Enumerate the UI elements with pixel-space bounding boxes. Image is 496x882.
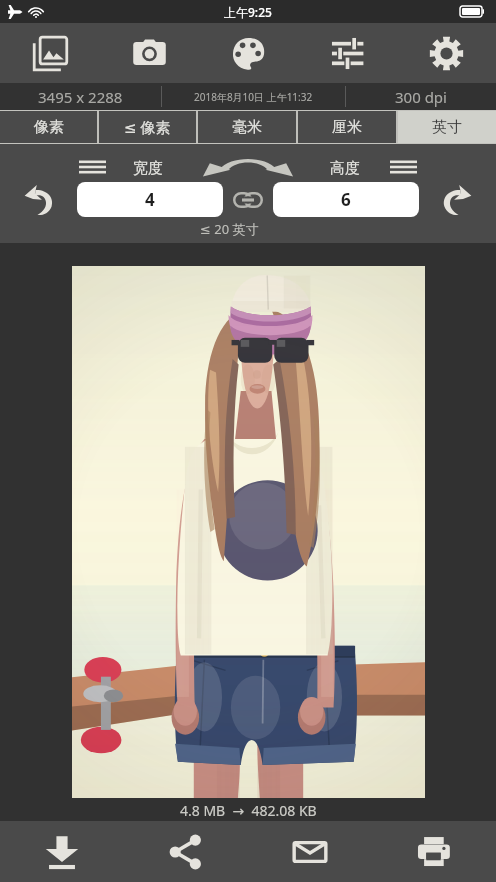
staticText: 厘米: [332, 118, 362, 137]
button[interactable]: Adjust: [298, 23, 397, 83]
button[interactable]: 6: [273, 182, 419, 217]
staticText: 2018年8月10日 上午11:32: [194, 90, 313, 104]
staticText: 4: [145, 188, 155, 211]
button[interactable]: 像素: [0, 111, 97, 143]
button[interactable]: Redo: [434, 177, 478, 221]
button[interactable]: Save: [0, 821, 124, 882]
staticText: 4.8 MB → 482.08 KB: [180, 801, 317, 820]
staticText: 像素: [34, 118, 64, 137]
button[interactable]: Settings: [397, 23, 496, 83]
staticText: 英寸: [432, 118, 462, 137]
button[interactable]: 英寸: [398, 111, 496, 143]
staticText: 上午9:25: [224, 4, 272, 20]
button[interactable]: Link aspect ratio: [232, 184, 264, 216]
button[interactable]: Gallery: [0, 23, 100, 83]
staticText: 毫米: [232, 118, 262, 137]
button[interactable]: Camera: [100, 23, 199, 83]
staticText: 宽度: [133, 159, 163, 178]
button[interactable]: 厘米: [298, 111, 396, 143]
staticText: 300 dpi: [395, 87, 447, 107]
button[interactable]: Undo: [18, 177, 62, 221]
staticText: 高度: [330, 159, 360, 178]
button[interactable]: Print: [372, 821, 496, 882]
staticText: 6: [341, 188, 351, 211]
button[interactable]: Share: [124, 821, 248, 882]
button[interactable]: 毫米: [198, 111, 296, 143]
button[interactable]: Email: [248, 821, 372, 882]
button[interactable]: 4: [77, 182, 223, 217]
button[interactable]: ≤ 像素: [99, 111, 196, 143]
staticText: 3495 x 2288: [38, 87, 123, 107]
staticText: ≤ 20 英寸: [200, 220, 259, 238]
staticText: ≤ 像素: [124, 117, 171, 137]
button[interactable]: Palette: [199, 23, 298, 83]
